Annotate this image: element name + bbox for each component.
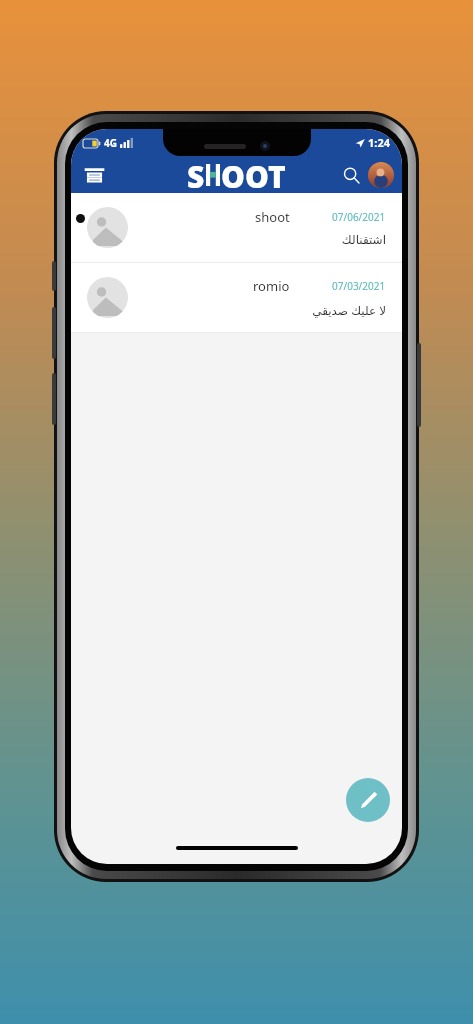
staticText: 4G bbox=[104, 136, 117, 150]
button[interactable]: Compose new message bbox=[346, 778, 390, 822]
button[interactable]: Profile bbox=[368, 162, 394, 188]
button[interactable]: Menu bbox=[77, 158, 111, 192]
button[interactable]: romio bbox=[71, 263, 402, 332]
staticText: shoot bbox=[255, 208, 290, 226]
staticText: OOT bbox=[221, 156, 286, 193]
button[interactable]: shoot bbox=[71, 193, 402, 262]
staticText: S bbox=[187, 156, 205, 193]
staticText: اشتقنالك bbox=[341, 233, 386, 247]
staticText: 07/03/2021 bbox=[332, 279, 386, 293]
staticText: 1:24 bbox=[368, 135, 390, 150]
button[interactable]: Search bbox=[336, 160, 366, 190]
staticText: لا عليك صديقي bbox=[312, 302, 386, 318]
staticText: 07/06/2021 bbox=[332, 210, 386, 224]
staticText: romio bbox=[253, 277, 290, 295]
